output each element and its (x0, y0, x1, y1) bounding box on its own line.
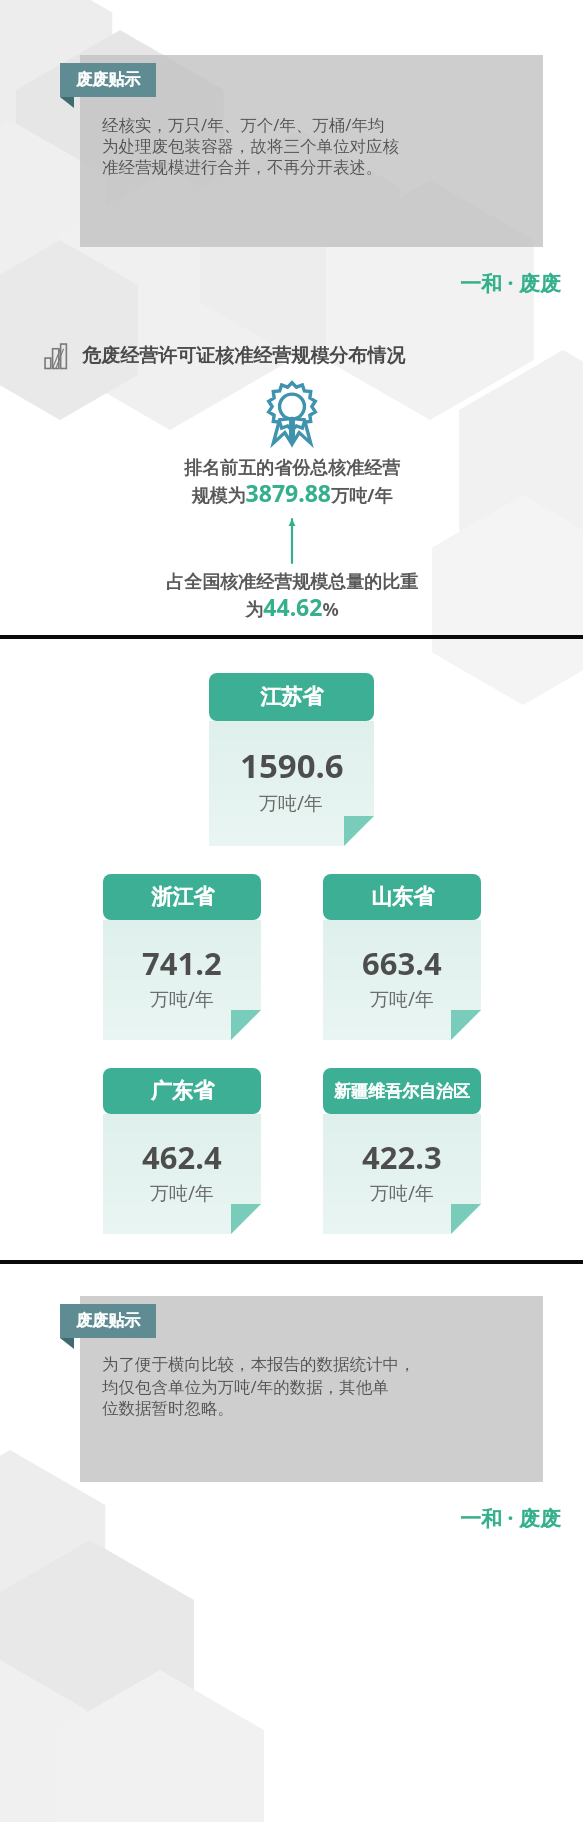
staticText: 废废贴示 (76, 1311, 140, 1331)
staticText: 位数据暂时忽略。 (102, 1398, 234, 1419)
staticText: 新疆维吾尔自治区 (334, 1081, 470, 1102)
button[interactable]: 广东省 (103, 1068, 261, 1234)
staticText: 1590.6 (240, 743, 344, 788)
staticText: 462.4 (142, 1136, 222, 1178)
button[interactable]: 为了便于横向比较，本报告的数据统计中， (80, 1296, 543, 1482)
staticText: 排名前五的省份总核准经营 规模为3879.88万吨/年 (184, 457, 400, 509)
staticText: 741.2 (142, 942, 222, 984)
staticText: 江苏省 (260, 684, 323, 710)
staticText: 万吨/年 (370, 1180, 435, 1206)
staticText: 占全国核准经营规模总量的比重 为44.62% (166, 571, 418, 623)
staticText: 经核实，万只/年、万个/年、万桶/年均 (102, 113, 385, 136)
staticText: 万吨/年 (259, 790, 324, 816)
staticText: 废废贴示 (76, 70, 140, 90)
staticText: 一和 · 废废 (460, 269, 561, 298)
staticText: 一和 · 废废 (460, 1504, 561, 1533)
button[interactable]: 经核实，万只/年、万个/年、万桶/年均 (80, 55, 543, 247)
staticText: 万吨/年 (150, 986, 215, 1012)
staticText: 浙江省 (151, 884, 214, 910)
staticText: 为处理废包装容器，故将三个单位对应核 (102, 136, 399, 157)
staticText: 663.4 (362, 942, 442, 984)
staticText: 均仅包含单位为万吨/年的数据，其他单 (102, 1375, 389, 1398)
staticText: 万吨/年 (150, 1180, 215, 1206)
button[interactable]: 江苏省 (209, 673, 374, 846)
button[interactable]: 浙江省 (103, 874, 261, 1040)
staticText: 准经营规模进行合并，不再分开表述。 (102, 157, 383, 178)
staticText: 422.3 (362, 1136, 442, 1178)
button[interactable]: 山东省 (323, 874, 481, 1040)
staticText: 为了便于横向比较，本报告的数据统计中， (102, 1354, 416, 1375)
staticText: 万吨/年 (370, 986, 435, 1012)
staticText: 危废经营许可证核准经营规模分布情况 (82, 344, 405, 368)
staticText: 广东省 (151, 1078, 214, 1104)
staticText: 山东省 (371, 884, 434, 910)
other: Award badge (266, 383, 318, 445)
button[interactable]: 新疆维吾尔自治区 (323, 1068, 481, 1234)
other: Bar chart (44, 343, 70, 369)
